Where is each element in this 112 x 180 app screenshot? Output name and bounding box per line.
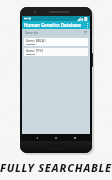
staticText: Gene: TP53	[26, 49, 44, 53]
button[interactable]: Recents	[71, 134, 79, 141]
staticText: Gene list	[25, 31, 39, 35]
staticText: Gene: BRCA1	[26, 39, 46, 43]
button[interactable]: Human Genetics Database	[22, 21, 90, 29]
button[interactable]: Gene: TP53	[24, 48, 88, 56]
staticText: Human Genetics Database	[24, 22, 81, 28]
other: Filter	[84, 31, 87, 34]
button[interactable]: Back	[33, 134, 41, 141]
button[interactable]: Gene list	[22, 29, 90, 36]
button[interactable]: Home	[52, 134, 60, 141]
staticText: FULLY SEARCHABLE	[0, 160, 112, 175]
button[interactable]: Gene: BRCA1	[24, 38, 88, 46]
button[interactable]: More options	[85, 21, 89, 29]
